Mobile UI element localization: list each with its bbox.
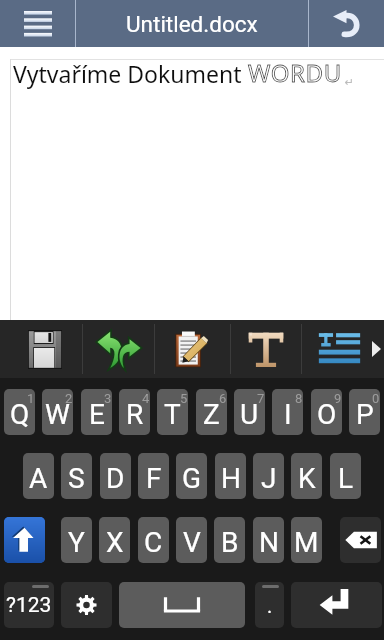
button[interactable]: Enter	[291, 582, 382, 628]
staticText: H	[221, 462, 241, 495]
staticText: Y	[68, 526, 85, 559]
button[interactable]: U	[234, 389, 265, 435]
button[interactable]: .	[255, 582, 284, 628]
staticText: WORDU	[248, 56, 342, 89]
staticText: R	[126, 398, 144, 431]
button[interactable]: Backspace	[340, 517, 381, 563]
staticText: ↵	[342, 74, 355, 89]
staticText: G	[182, 462, 202, 495]
button[interactable]: W	[42, 389, 73, 435]
staticText: 7	[257, 391, 265, 406]
button[interactable]: S	[61, 453, 92, 499]
staticText: W	[45, 398, 70, 431]
button[interactable]: P	[349, 389, 380, 435]
staticText: ?123	[6, 593, 52, 618]
staticText: X	[106, 526, 124, 559]
staticText: M	[294, 526, 319, 559]
button[interactable]: C	[138, 517, 169, 563]
staticText: Z	[203, 398, 220, 431]
button[interactable]: E	[81, 389, 112, 435]
staticText: 6	[219, 391, 227, 406]
staticText: 3	[104, 391, 112, 406]
staticText: J	[261, 462, 277, 495]
staticText: T	[164, 398, 181, 431]
button[interactable]: Paragraph	[305, 320, 373, 378]
staticText: F	[146, 462, 162, 495]
button[interactable]: I	[272, 389, 303, 435]
button[interactable]: X	[99, 517, 130, 563]
button[interactable]: Menu	[0, 0, 75, 47]
staticText: P	[356, 398, 374, 431]
button[interactable]: J	[253, 453, 284, 499]
staticText: 4	[142, 391, 150, 406]
button[interactable]: Font	[231, 320, 301, 378]
staticText: I	[284, 398, 292, 431]
staticText: 2	[65, 391, 73, 406]
staticText: S	[68, 462, 85, 495]
staticText: 1	[27, 391, 35, 406]
button[interactable]: Undo	[309, 0, 384, 47]
button[interactable]: T	[157, 389, 188, 435]
button[interactable]: K	[291, 453, 322, 499]
button[interactable]: Settings	[61, 582, 112, 628]
staticText: Q	[10, 398, 30, 431]
button[interactable]: V	[176, 517, 207, 563]
button[interactable]: Review	[155, 320, 230, 378]
button[interactable]: More	[368, 320, 384, 378]
button[interactable]: Z	[196, 389, 227, 435]
button[interactable]: F	[138, 453, 169, 499]
button[interactable]: R	[119, 389, 150, 435]
staticText: Vytvaříme Dokument	[13, 58, 248, 89]
button[interactable]: ?123	[4, 582, 54, 628]
staticText: 5	[180, 391, 188, 406]
button[interactable]: Save	[8, 320, 82, 378]
button[interactable]: A	[23, 453, 54, 499]
button[interactable]: Q	[4, 389, 35, 435]
button[interactable]: Y	[61, 517, 92, 563]
button[interactable]: O	[311, 389, 342, 435]
staticText: K	[298, 462, 316, 495]
button[interactable]: Space	[119, 582, 245, 628]
button[interactable]: M	[291, 517, 322, 563]
staticText: E	[89, 398, 105, 431]
staticText: 9	[334, 391, 342, 406]
staticText: V	[183, 526, 201, 559]
staticText: L	[338, 462, 354, 495]
staticText: 0	[372, 391, 380, 406]
button[interactable]: L	[330, 453, 361, 499]
staticText: Untitled.docx	[126, 11, 258, 37]
staticText: .	[267, 594, 273, 617]
staticText: 8	[295, 391, 303, 406]
staticText: B	[221, 526, 239, 559]
staticText: D	[106, 462, 125, 495]
staticText: N	[259, 526, 279, 559]
button[interactable]: N	[253, 517, 284, 563]
button[interactable]: Undo and redo	[83, 320, 154, 378]
button[interactable]: H	[215, 453, 246, 499]
button[interactable]: B	[214, 517, 245, 563]
button[interactable]: Shift	[4, 517, 45, 563]
button[interactable]: G	[176, 453, 207, 499]
staticText: C	[144, 526, 163, 559]
button[interactable]: Untitled.docx	[76, 0, 308, 47]
staticText: O	[317, 398, 337, 431]
staticText: U	[240, 398, 259, 431]
staticText: A	[29, 462, 48, 495]
button[interactable]: D	[100, 453, 131, 499]
